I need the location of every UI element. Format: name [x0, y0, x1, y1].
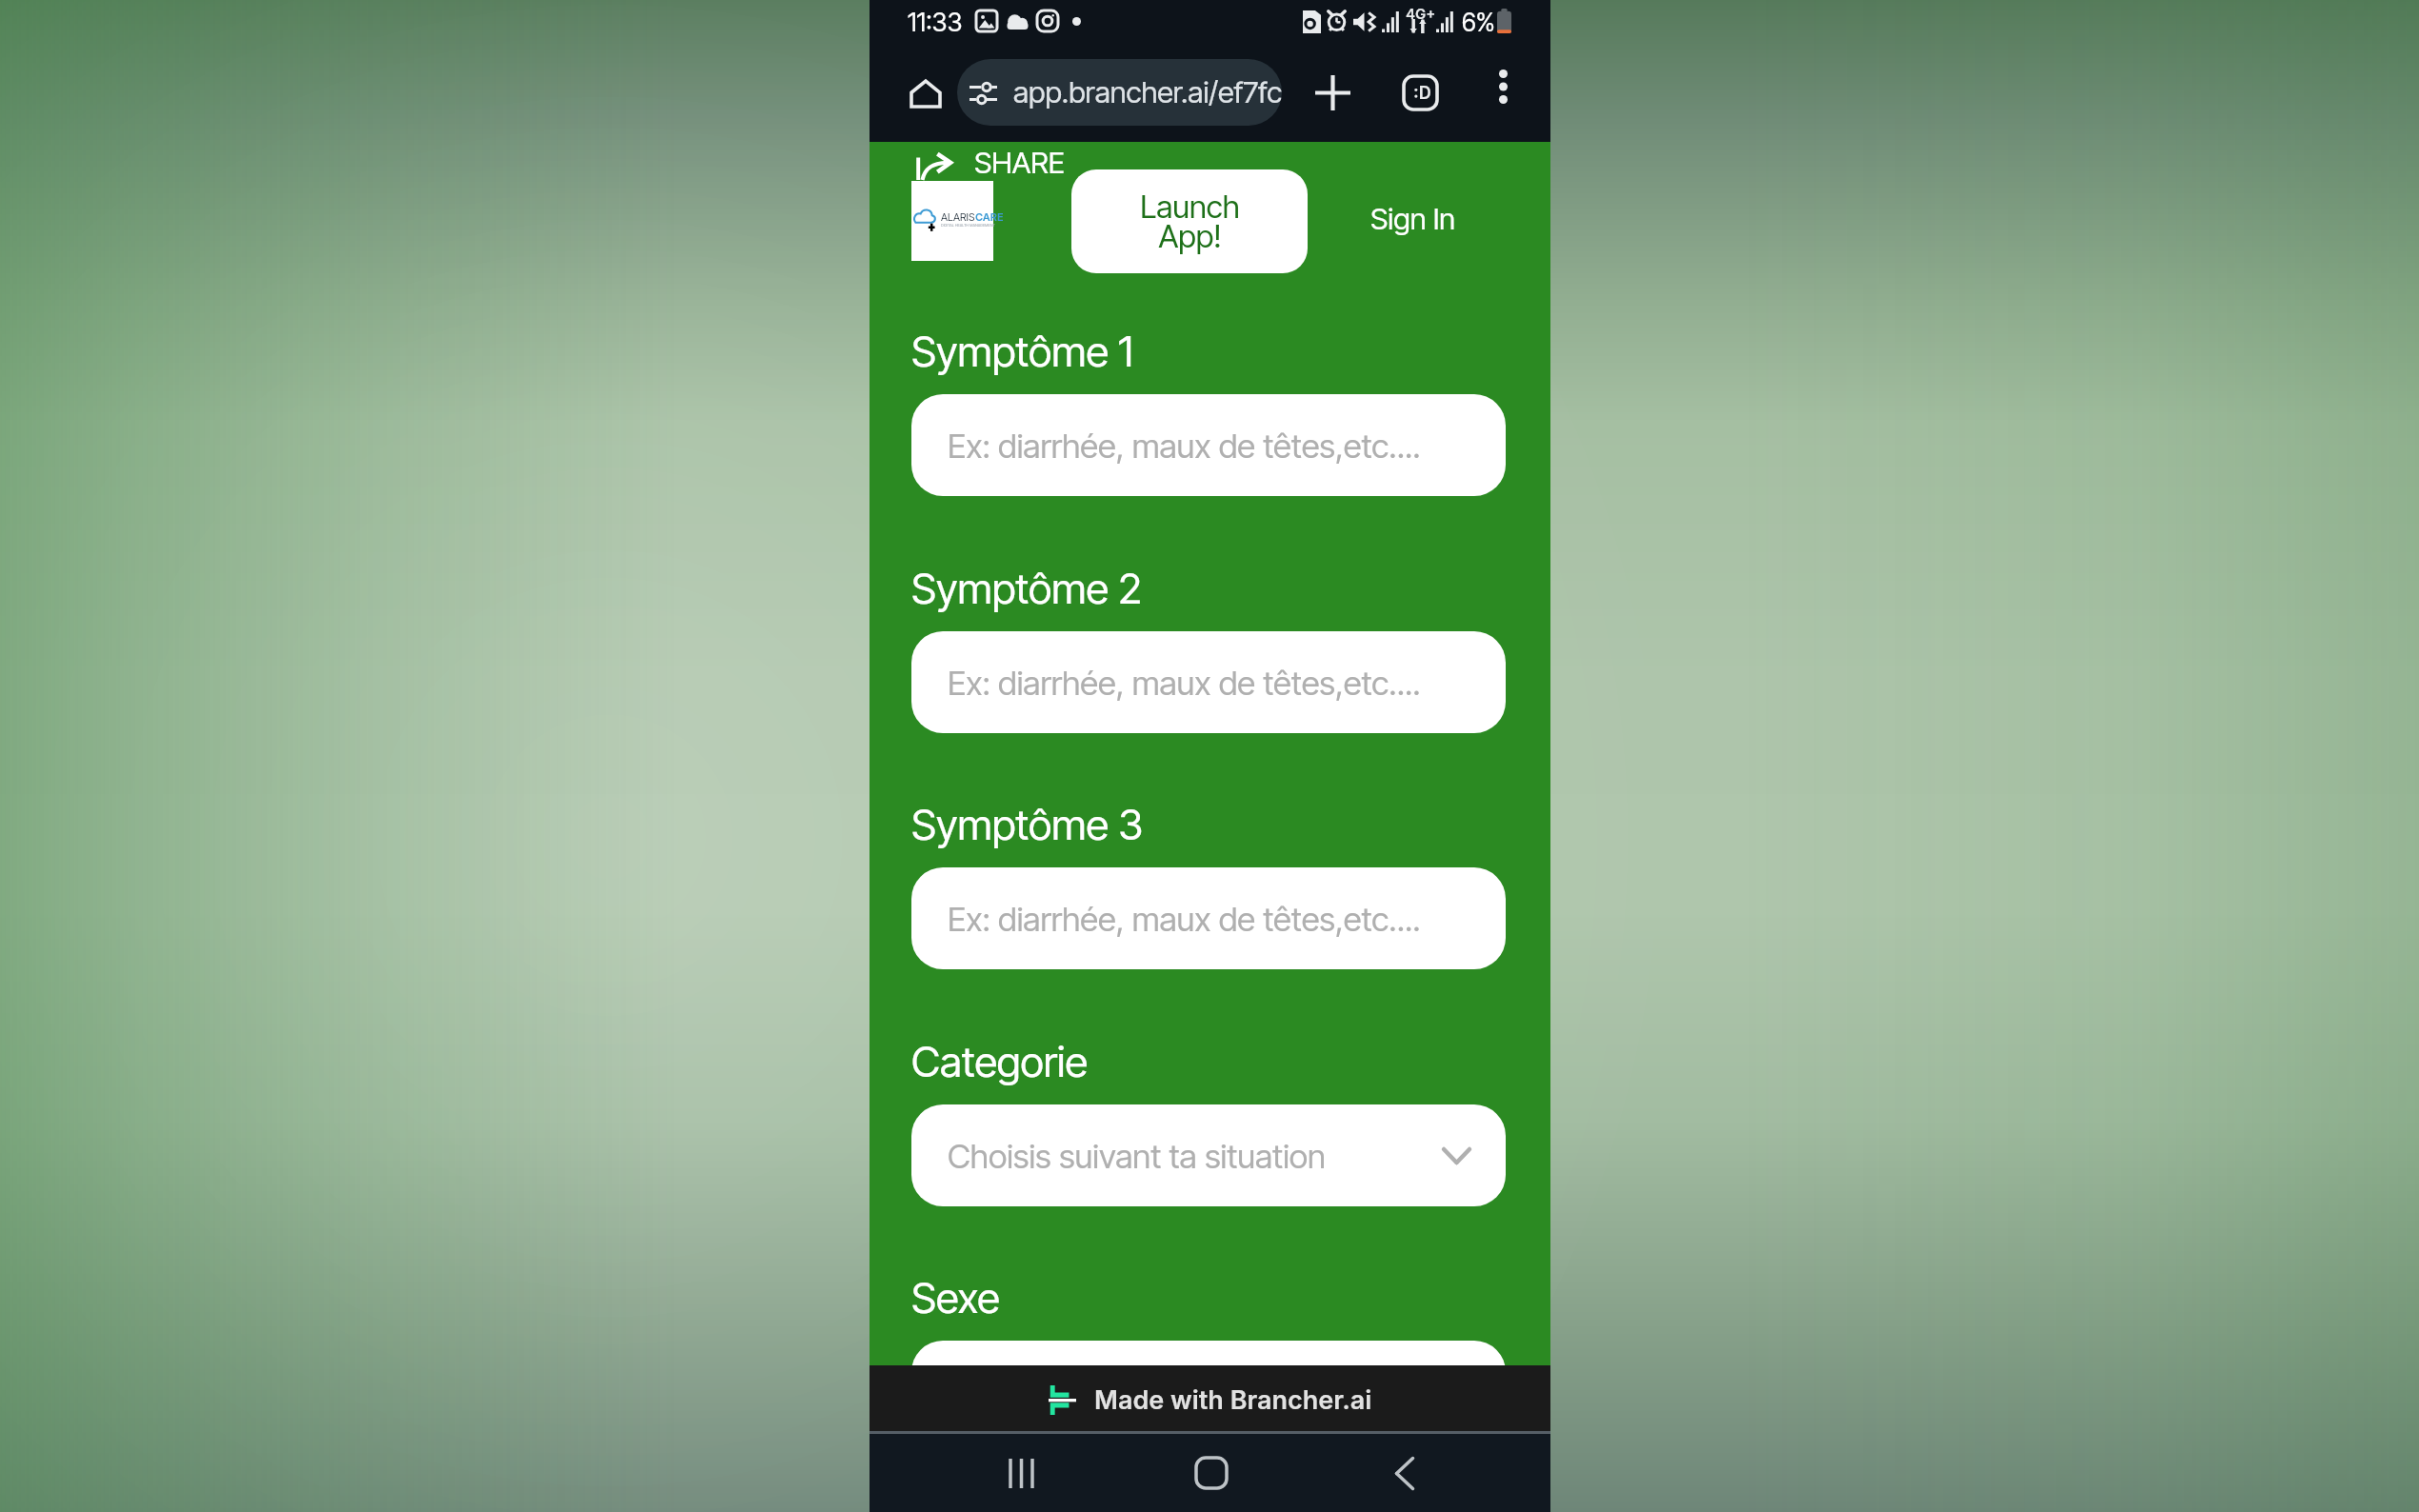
staticText: Choisis suivant ta situation	[948, 1136, 1326, 1176]
staticText: 11:33	[908, 7, 963, 38]
staticText: SHARE	[974, 145, 1065, 181]
button[interactable]: New tab	[1301, 61, 1364, 124]
button[interactable]: More options	[1477, 61, 1529, 112]
staticText: Launch App!	[1140, 188, 1240, 255]
button[interactable]: Home	[1173, 1435, 1249, 1511]
button[interactable]: Launch App!	[1071, 169, 1308, 273]
staticText: CARE	[975, 210, 1004, 223]
staticText: Ex: diarrhée, maux de têtes,etc....	[948, 899, 1421, 939]
staticText: Ex: diarrhée, maux de têtes,etc....	[948, 663, 1421, 703]
button[interactable]: Made with Brancher.ai	[870, 1365, 1550, 1434]
staticText: 6%	[1462, 8, 1495, 37]
button[interactable]: SHARE	[911, 144, 1074, 185]
staticText: Ex: diarrhée, maux de têtes,etc....	[948, 426, 1421, 466]
button[interactable]: Ex: diarrhée, maux de têtes,etc....	[911, 867, 1506, 969]
staticText: ALARIS	[941, 210, 975, 223]
button[interactable]: Sign In	[1355, 191, 1471, 247]
button[interactable]: app.brancher.ai/ef7fc	[957, 59, 1282, 126]
button[interactable]	[911, 1341, 1506, 1442]
staticText: Symptôme 1	[911, 326, 1133, 376]
staticText: Symptôme 3	[911, 799, 1144, 849]
staticText: Categorie	[911, 1036, 1088, 1086]
button[interactable]: Back	[1367, 1435, 1443, 1511]
staticText: Sign In	[1370, 201, 1456, 237]
staticText: Symptôme 2	[911, 563, 1142, 613]
button[interactable]: Choisis suivant ta situation	[911, 1104, 1506, 1206]
button[interactable]: Recents	[983, 1435, 1059, 1511]
staticText: Sexe	[911, 1272, 1000, 1323]
staticText: :D	[1413, 83, 1431, 104]
button[interactable]: Tabs	[1389, 61, 1451, 124]
staticText: DIGITAL HEALTH MANAGEMENT	[941, 223, 995, 228]
button[interactable]: Ex: diarrhée, maux de têtes,etc....	[911, 394, 1506, 496]
staticText: 4G+	[1406, 5, 1436, 22]
staticText: Made with Brancher.ai	[1094, 1384, 1372, 1416]
staticText: app.brancher.ai/ef7fc	[1013, 74, 1282, 110]
button[interactable]: Home	[893, 61, 958, 126]
button[interactable]: Ex: diarrhée, maux de têtes,etc....	[911, 631, 1506, 733]
